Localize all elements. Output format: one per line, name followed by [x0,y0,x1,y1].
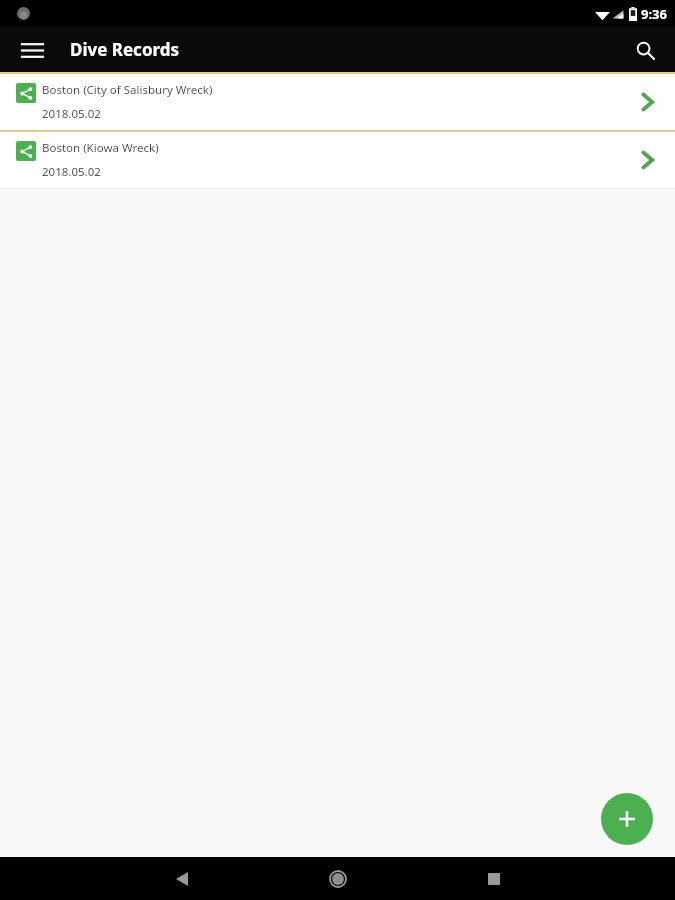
button[interactable]: Open details [625,80,669,124]
staticText: Boston (City of Salisbury Wreck) [42,82,213,98]
button[interactable]: Recent apps [470,857,518,900]
button[interactable]: Open navigation menu [10,28,54,72]
button[interactable]: Boston (City of Salisbury Wreck) [0,74,675,130]
staticText: Boston (Kiowa Wreck) [42,140,159,156]
staticText: 9:36 [641,5,667,23]
button[interactable]: Open details [625,138,669,182]
button[interactable]: Back [158,857,206,900]
staticText: 2018.05.02 [42,164,101,180]
button[interactable]: Boston (Kiowa Wreck) [0,132,675,188]
button[interactable]: Search [623,28,667,72]
staticText: 2018.05.02 [42,106,101,122]
button[interactable]: Home [314,857,362,900]
staticText: Dive Records [70,38,180,61]
button[interactable]: Add dive record [601,793,653,845]
